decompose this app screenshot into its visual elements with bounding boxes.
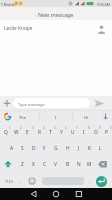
staticText: ?123 xyxy=(5,179,13,184)
button[interactable]: M xyxy=(84,158,95,170)
button[interactable] xyxy=(2,158,14,170)
button[interactable]: A xyxy=(6,142,17,154)
staticText: 2 xyxy=(20,126,22,130)
staticText: M xyxy=(87,161,92,168)
staticText: S xyxy=(21,145,24,152)
staticText: D xyxy=(32,145,36,152)
staticText: Q xyxy=(4,129,8,136)
button[interactable] xyxy=(50,190,62,199)
button[interactable] xyxy=(95,22,108,35)
staticText: B xyxy=(66,161,70,168)
staticText: Type message xyxy=(18,102,45,107)
staticText: P xyxy=(105,129,108,136)
button[interactable]: , xyxy=(17,176,25,186)
button[interactable]: Y xyxy=(56,126,67,138)
button[interactable]: T xyxy=(45,126,56,138)
staticText: 9:00 AM xyxy=(97,2,110,7)
button[interactable]: The xyxy=(14,113,30,121)
staticText: Leslie Knope xyxy=(4,25,33,32)
staticText: K xyxy=(88,145,91,152)
staticText: 0 xyxy=(110,126,112,130)
button[interactable] xyxy=(0,96,112,110)
staticText: R xyxy=(38,129,41,136)
button[interactable] xyxy=(92,98,106,109)
button[interactable] xyxy=(100,111,111,122)
staticText: 6 xyxy=(65,126,67,130)
button[interactable]: . xyxy=(86,176,94,186)
staticText: L xyxy=(99,145,102,152)
button[interactable] xyxy=(27,190,39,199)
staticText: , xyxy=(20,178,22,184)
staticText: U xyxy=(71,129,75,136)
staticText: X xyxy=(32,161,35,168)
button[interactable]: V xyxy=(50,158,61,170)
staticText: Z xyxy=(21,161,24,168)
button[interactable]: N xyxy=(73,158,84,170)
button[interactable]: R xyxy=(34,126,45,138)
staticText: 4 xyxy=(43,126,45,130)
staticText: 7 xyxy=(76,126,78,130)
button[interactable]: Leslie Knope xyxy=(4,23,54,33)
button[interactable]: H xyxy=(62,142,73,154)
button[interactable] xyxy=(13,98,90,108)
button[interactable]: D xyxy=(28,142,39,154)
staticText: V xyxy=(54,161,57,168)
staticText: 9 xyxy=(99,126,101,130)
staticText: 1 xyxy=(9,126,11,130)
button[interactable]: Z xyxy=(17,158,28,170)
staticText: H xyxy=(66,145,70,152)
staticText: O xyxy=(94,129,98,136)
staticText: 8 xyxy=(88,126,90,130)
button[interactable]: C xyxy=(39,158,50,170)
staticText: T xyxy=(49,129,52,136)
staticText: I xyxy=(83,129,85,136)
staticText: G xyxy=(54,145,58,152)
button[interactable]: S xyxy=(17,142,28,154)
button[interactable] xyxy=(73,190,85,199)
staticText: T-Mobile xyxy=(1,2,15,7)
button[interactable]: I xyxy=(48,113,64,121)
button[interactable]: P xyxy=(101,126,112,138)
button[interactable]: Q xyxy=(0,126,11,138)
staticText: A xyxy=(10,145,14,152)
button[interactable] xyxy=(26,176,36,186)
button[interactable]: Hi xyxy=(78,113,94,121)
staticText: N xyxy=(77,161,81,168)
button[interactable]: L xyxy=(95,142,106,154)
staticText: New message xyxy=(38,11,74,18)
button[interactable]: J xyxy=(73,142,84,154)
button[interactable]: G xyxy=(50,142,61,154)
button[interactable] xyxy=(96,176,107,187)
staticText: W xyxy=(14,129,19,136)
button[interactable]: E xyxy=(22,126,33,138)
button[interactable]: X xyxy=(28,158,39,170)
button[interactable] xyxy=(2,98,12,109)
staticText: The xyxy=(19,115,26,120)
button[interactable]: F xyxy=(39,142,50,154)
button[interactable] xyxy=(96,158,109,170)
button[interactable]: W xyxy=(11,126,22,138)
button[interactable]: O xyxy=(90,126,101,138)
button[interactable]: U xyxy=(67,126,78,138)
staticText: Y xyxy=(60,129,63,136)
staticText: I xyxy=(55,115,57,120)
staticText: J xyxy=(78,145,80,152)
staticText: F xyxy=(43,145,46,152)
staticText: Hi xyxy=(84,115,88,120)
staticText: 3 xyxy=(32,126,34,130)
staticText: 5 xyxy=(54,126,56,130)
button[interactable]: K xyxy=(84,142,95,154)
staticText: E xyxy=(26,129,29,136)
button[interactable]: ?123 xyxy=(2,177,15,186)
staticText: C xyxy=(43,161,47,168)
staticText: . xyxy=(89,178,91,184)
button[interactable]: B xyxy=(62,158,73,170)
button[interactable]: I xyxy=(78,126,89,138)
